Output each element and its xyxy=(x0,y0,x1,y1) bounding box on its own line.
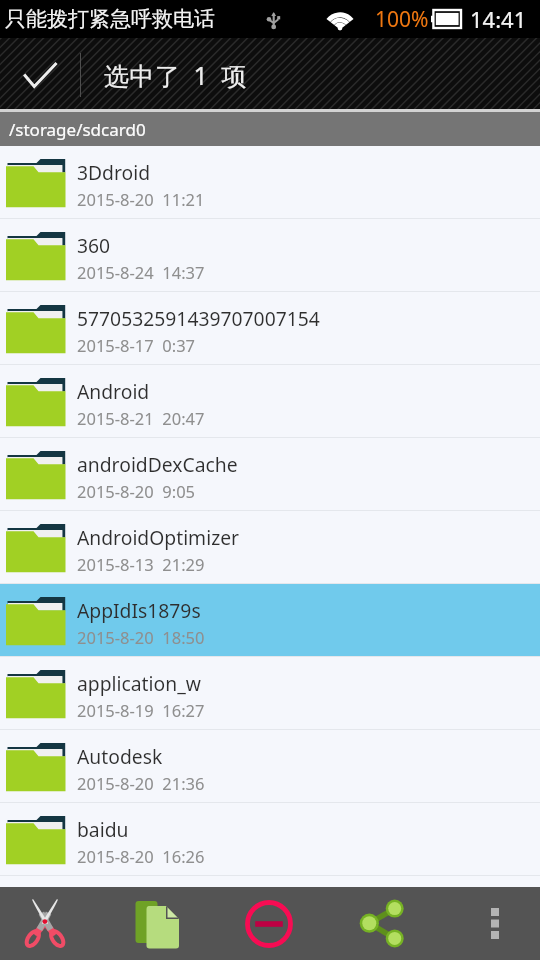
staticText: /storage/sdcard0 xyxy=(9,118,146,141)
button[interactable]: application_w xyxy=(0,657,540,730)
staticText: 2015-8-20 21:36 xyxy=(77,772,205,794)
button[interactable]: More options xyxy=(449,887,540,960)
staticText: baidu xyxy=(77,816,129,842)
staticText: AndroidOptimizer xyxy=(77,524,240,550)
button[interactable]: Autodesk xyxy=(0,730,540,803)
button[interactable]: Cut xyxy=(0,887,90,960)
button[interactable]: /storage/sdcard0 xyxy=(0,112,540,146)
staticText: 5770532591439707007154 xyxy=(77,305,320,331)
staticText: 3Ddroid xyxy=(77,159,151,185)
button[interactable]: baidu xyxy=(0,803,540,876)
staticText: Autodesk xyxy=(77,743,163,769)
button[interactable]: 3Ddroid xyxy=(0,146,540,219)
staticText: 360 xyxy=(77,232,111,258)
staticText: 只能拨打紧急呼救电话 xyxy=(5,6,215,32)
button[interactable]: Share xyxy=(313,887,449,960)
staticText: 14:41 xyxy=(470,4,527,34)
staticText: AppIdIs1879s xyxy=(77,597,201,623)
button[interactable]: 5770532591439707007154 xyxy=(0,292,540,365)
staticText: 2015-8-20 11:21 xyxy=(77,188,205,210)
button[interactable]: 360 xyxy=(0,219,540,292)
button[interactable]: Confirm selection xyxy=(0,38,80,112)
staticText: Android xyxy=(77,378,150,404)
staticText: 2015-8-13 21:29 xyxy=(77,553,205,575)
staticText: androidDexCache xyxy=(77,451,238,477)
button[interactable]: Delete xyxy=(224,887,313,960)
staticText: 2015-8-19 16:27 xyxy=(77,699,205,721)
button[interactable]: Copy xyxy=(90,887,224,960)
button[interactable]: androidDexCache xyxy=(0,438,540,511)
staticText: 2015-8-20 16:26 xyxy=(77,845,205,867)
staticText: 2015-8-20 9:05 xyxy=(77,480,196,502)
staticText: application_w xyxy=(77,670,201,696)
staticText: 2015-8-20 18:50 xyxy=(77,626,205,648)
button[interactable]: AndroidOptimizer xyxy=(0,511,540,584)
staticText: 选中了 1 项 xyxy=(104,58,247,92)
staticText: 2015-8-24 14:37 xyxy=(77,261,205,283)
staticText: 100% xyxy=(375,5,429,34)
staticText: 2015-8-17 0:37 xyxy=(77,334,196,356)
button[interactable]: AppIdIs1879s xyxy=(0,584,540,657)
staticText: 2015-8-21 20:47 xyxy=(77,407,205,429)
button[interactable]: Android xyxy=(0,365,540,438)
